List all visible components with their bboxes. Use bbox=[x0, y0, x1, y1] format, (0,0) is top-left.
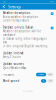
staticText: 100% bbox=[50, 1, 54, 3]
button[interactable]: m/s bbox=[41, 79, 46, 83]
staticText: Pressure bbox=[3, 73, 15, 76]
button[interactable]: kPa bbox=[47, 73, 53, 76]
staticText: km/h bbox=[49, 80, 52, 82]
staticText: kPa bbox=[49, 74, 52, 75]
staticText: Settings bbox=[8, 4, 21, 9]
button[interactable]: km/h bbox=[47, 79, 53, 83]
staticText: Every 2 hours bbox=[3, 55, 21, 59]
button[interactable]: Weather description bbox=[0, 10, 56, 24]
button[interactable]: hPa/mBar bbox=[36, 73, 46, 76]
staticText: Show weather description under temperatu… bbox=[3, 15, 39, 22]
staticText: Translate only to Italian bbox=[3, 26, 34, 29]
staticText: © 2019 Weather bbox=[22, 90, 33, 92]
button[interactable]: Update sources bbox=[0, 60, 56, 71]
staticText: 10:30 bbox=[2, 1, 6, 3]
staticText: Weather description bbox=[3, 11, 31, 15]
staticText: in the original English wording bbox=[3, 44, 48, 48]
staticText: hPa/mBar bbox=[38, 74, 45, 75]
button[interactable]: Back bbox=[0, 4, 6, 9]
staticText: OpenWeatherMap bbox=[3, 66, 27, 70]
staticText: Weather description will be translated bbox=[3, 30, 42, 37]
button[interactable]: Translate only to Italian bbox=[0, 24, 56, 50]
staticText: to Italian only, other languages stay bbox=[3, 37, 47, 44]
button[interactable]: Update interval bbox=[0, 50, 56, 60]
staticText: Update sources bbox=[3, 62, 24, 66]
staticText: m/s bbox=[43, 80, 45, 82]
staticText: Wind speed bbox=[3, 79, 20, 83]
staticText: Update interval bbox=[3, 51, 24, 55]
